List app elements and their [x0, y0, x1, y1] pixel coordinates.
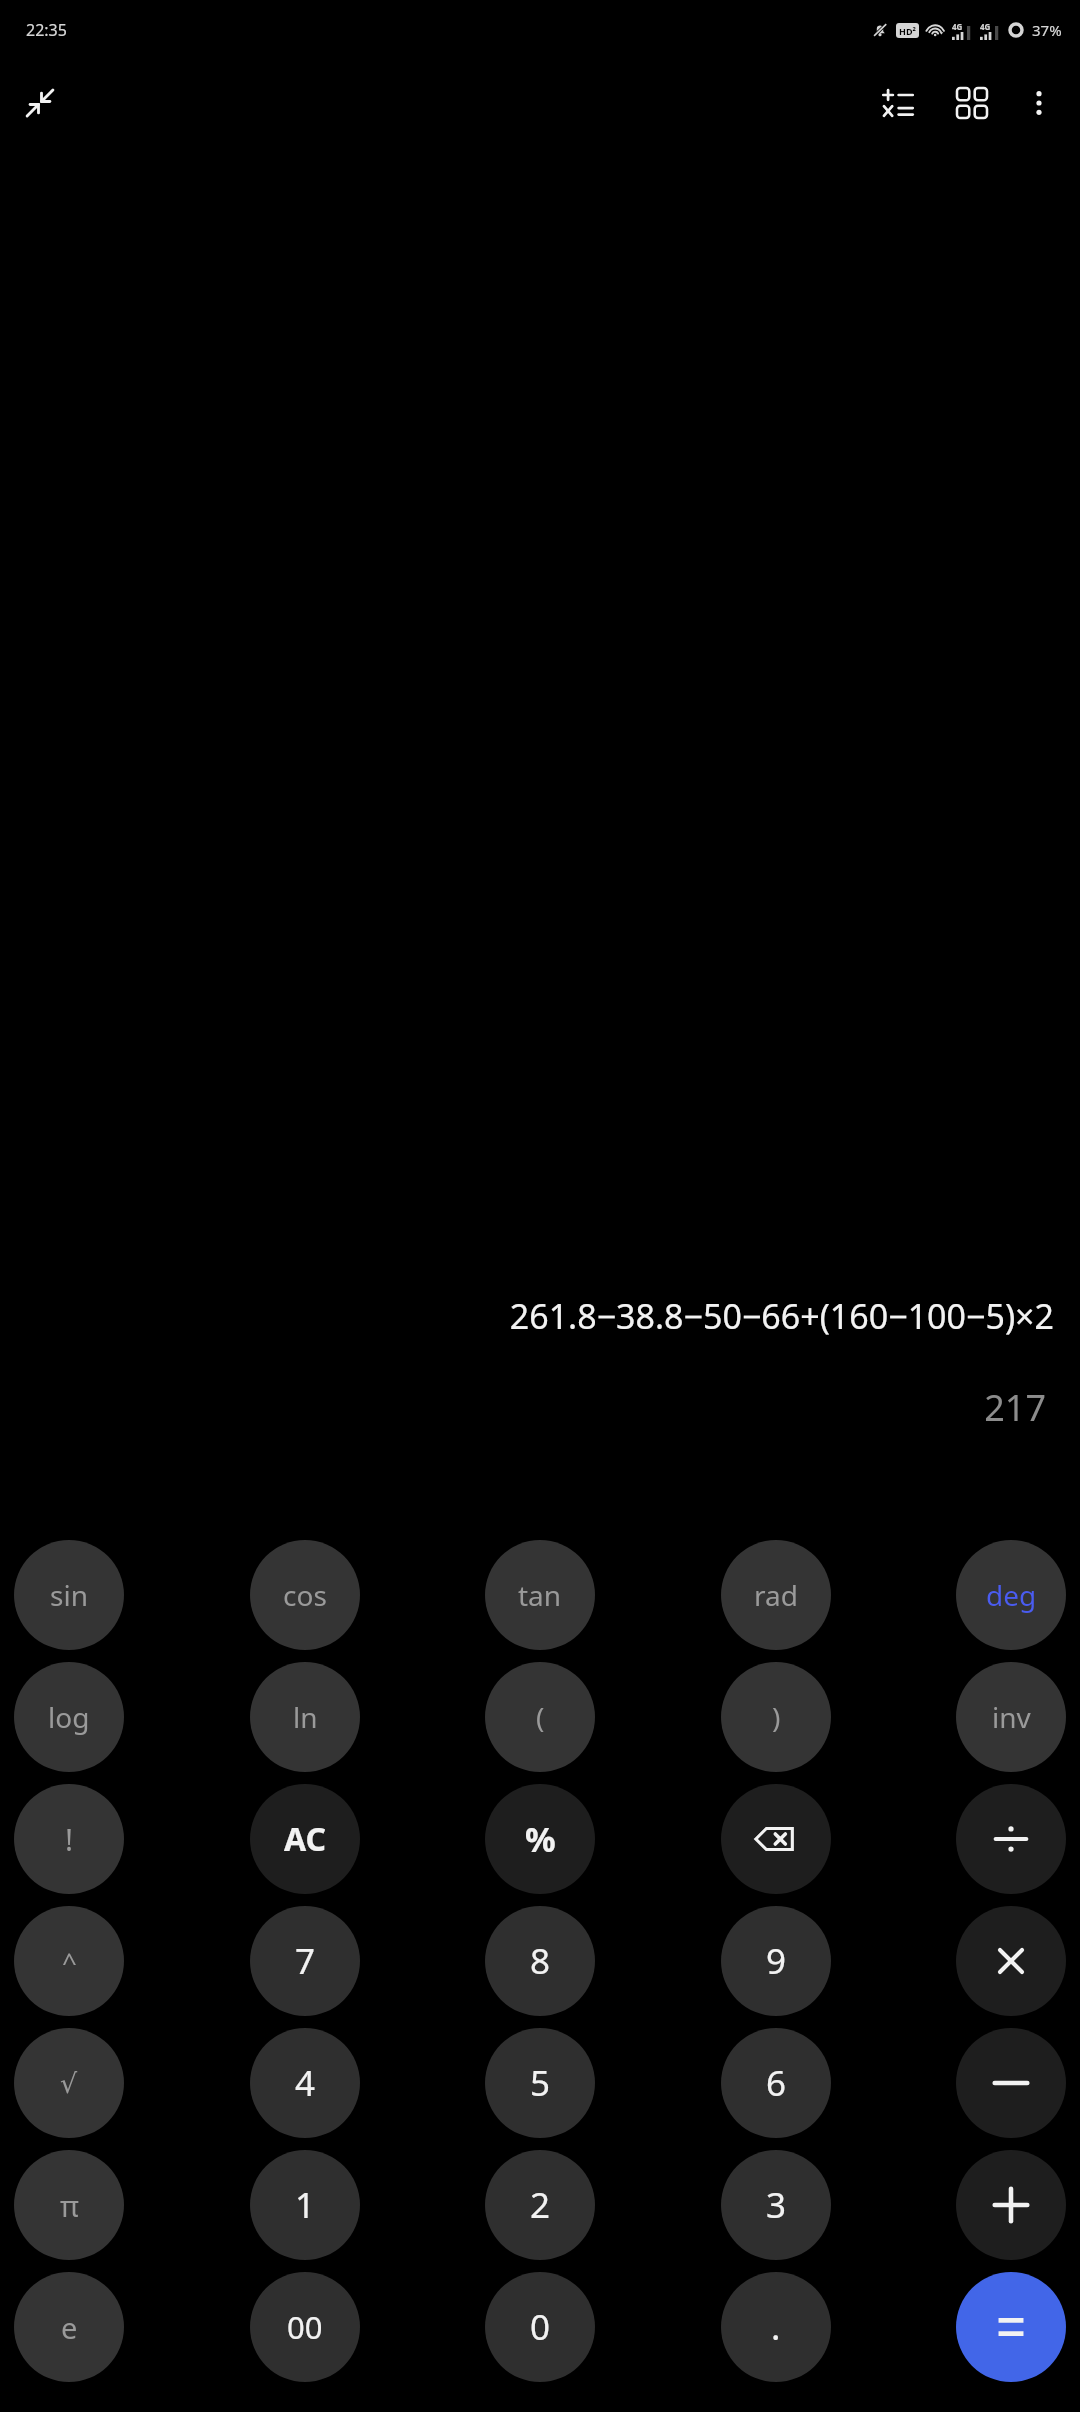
button[interactable]: 8: [485, 1906, 595, 2016]
staticText: cos: [283, 1576, 327, 1614]
staticText: tan: [518, 1576, 562, 1614]
staticText: e: [61, 2308, 78, 2347]
button[interactable]: (: [485, 1662, 595, 1772]
staticText: 00: [287, 2306, 323, 2348]
button[interactable]: 3: [721, 2150, 831, 2260]
button[interactable]: 1: [250, 2150, 360, 2260]
staticText: 2: [530, 2181, 551, 2229]
button[interactable]: 5: [485, 2028, 595, 2138]
button[interactable]: 6: [721, 2028, 831, 2138]
button[interactable]: 00: [250, 2272, 360, 2382]
button[interactable]: More options: [1010, 74, 1068, 132]
button[interactable]: 9: [721, 1906, 831, 2016]
staticText: 8: [530, 1937, 551, 1985]
button[interactable]: √: [14, 2028, 124, 2138]
staticText: ^: [62, 1944, 77, 1979]
staticText: 6: [766, 2059, 787, 2107]
button[interactable]: Multiply: [956, 1906, 1066, 2016]
staticText: rad: [754, 1576, 798, 1614]
button[interactable]: .: [721, 2272, 831, 2382]
staticText: 22:35: [26, 19, 67, 41]
staticText: !: [65, 1819, 74, 1860]
button[interactable]: Unit converter: [868, 73, 928, 133]
button[interactable]: AC: [250, 1784, 360, 1894]
staticText: (: [536, 1698, 545, 1736]
button[interactable]: e: [14, 2272, 124, 2382]
staticText: 0: [530, 2303, 551, 2351]
staticText: √: [60, 2068, 78, 2099]
button[interactable]: 0: [485, 2272, 595, 2382]
button[interactable]: Add: [956, 2150, 1066, 2260]
staticText: 4G: [980, 21, 991, 32]
button[interactable]: 7: [250, 1906, 360, 2016]
button[interactable]: Layout style: [942, 73, 1002, 133]
button[interactable]: tan: [485, 1540, 595, 1650]
button[interactable]: ): [721, 1662, 831, 1772]
button[interactable]: Divide: [956, 1784, 1066, 1894]
button[interactable]: %: [485, 1784, 595, 1894]
staticText: 4: [295, 2059, 316, 2107]
staticText: %: [525, 1816, 556, 1862]
staticText: 7: [295, 1937, 316, 1985]
staticText: 217: [34, 1383, 1046, 1432]
button[interactable]: rad: [721, 1540, 831, 1650]
button[interactable]: sin: [14, 1540, 124, 1650]
staticText: 4G: [952, 21, 963, 32]
staticText: sin: [50, 1576, 88, 1614]
staticText: ): [772, 1698, 781, 1736]
staticText: π: [60, 2186, 79, 2225]
staticText: 5: [530, 2059, 551, 2107]
staticText: ln: [293, 1698, 318, 1736]
button[interactable]: 4: [250, 2028, 360, 2138]
staticText: 37%: [1032, 20, 1062, 40]
staticText: deg: [986, 1576, 1037, 1614]
button[interactable]: inv: [956, 1662, 1066, 1772]
staticText: inv: [992, 1698, 1031, 1736]
button[interactable]: !: [14, 1784, 124, 1894]
button[interactable]: π: [14, 2150, 124, 2260]
button[interactable]: 2: [485, 2150, 595, 2260]
button[interactable]: cos: [250, 1540, 360, 1650]
button[interactable]: Collapse: [12, 75, 68, 131]
staticText: 261.8−38.8−50−66+(160−100−5)×2: [26, 1293, 1054, 1339]
button[interactable]: Backspace: [721, 1784, 831, 1894]
staticText: 1: [295, 2181, 316, 2229]
button[interactable]: deg: [956, 1540, 1066, 1650]
button[interactable]: ^: [14, 1906, 124, 2016]
staticText: .: [771, 2303, 781, 2351]
button[interactable]: ln: [250, 1662, 360, 1772]
button[interactable]: log: [14, 1662, 124, 1772]
button[interactable]: Subtract: [956, 2028, 1066, 2138]
staticText: HD²: [899, 25, 916, 37]
staticText: 3: [766, 2181, 787, 2229]
staticText: log: [48, 1698, 90, 1736]
staticText: AC: [284, 1817, 327, 1861]
button[interactable]: Equals: [956, 2272, 1066, 2382]
staticText: 9: [766, 1937, 787, 1985]
